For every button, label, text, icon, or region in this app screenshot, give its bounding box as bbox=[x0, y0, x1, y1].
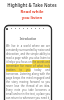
staticText: Introduction bbox=[5, 37, 51, 41]
staticText: Highlight & Take Notes bbox=[0, 2, 64, 8]
staticText: Read while you listen bbox=[0, 9, 64, 20]
button[interactable]: Reader toolbar bbox=[6, 27, 50, 30]
staticText: We live in a world where we are constant… bbox=[6, 44, 50, 100]
